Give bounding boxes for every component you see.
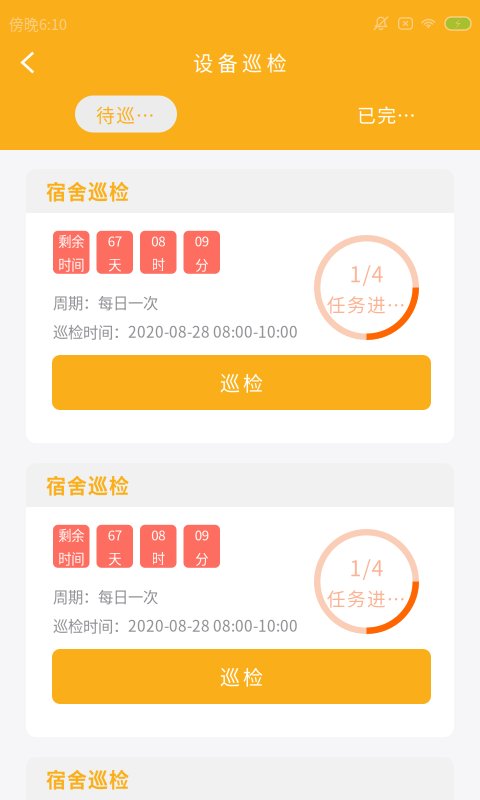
staticText: 天 (108, 254, 121, 274)
staticText: 巡检时间：2020-08-28 08:00-10:00 (53, 614, 298, 636)
staticText: 67 (108, 525, 122, 544)
button[interactable]: 巡检 (52, 649, 431, 704)
staticText: 巡检 (220, 368, 263, 397)
staticText: 08 (151, 525, 165, 544)
staticText: 待巡检 (96, 100, 156, 127)
staticText: 设备巡检 (193, 48, 287, 77)
staticText: 周期：每日一次 (53, 291, 158, 313)
staticText: 已完成 (357, 100, 417, 127)
button[interactable]: 待巡检 (75, 95, 177, 132)
staticText: 67 (108, 231, 122, 250)
staticText: 周期：每日一次 (53, 585, 158, 607)
staticText: 1/4 (349, 551, 383, 582)
staticText: 09 (195, 231, 209, 250)
button[interactable]: 已完成 (336, 95, 438, 132)
staticText: 08 (151, 231, 165, 250)
staticText: 巡检 (220, 662, 263, 691)
staticText: 剩余 (58, 231, 84, 250)
staticText: 剩余 (58, 525, 84, 544)
staticText: 宿舍巡检 (46, 470, 129, 499)
button[interactable]: 巡检 (52, 355, 431, 410)
staticText: 傍晚6:10 (9, 13, 67, 34)
staticText: 天 (108, 548, 121, 568)
staticText: 时 (152, 548, 165, 568)
staticText: 分 (195, 548, 208, 568)
staticText: 1/4 (349, 257, 383, 288)
staticText: 任务进度 (327, 584, 406, 611)
staticText: 任务进度 (327, 290, 406, 317)
staticText: 宿舍巡检 (46, 176, 129, 205)
staticText: 宿舍巡检 (46, 764, 129, 793)
staticText: 时间 (58, 254, 84, 274)
button[interactable]: 返回 (0, 40, 50, 85)
staticText: 09 (195, 525, 209, 544)
staticText: 分 (195, 254, 208, 274)
staticText: 时 (152, 254, 165, 274)
staticText: 时间 (58, 548, 84, 568)
staticText: 巡检时间：2020-08-28 08:00-10:00 (53, 320, 298, 342)
